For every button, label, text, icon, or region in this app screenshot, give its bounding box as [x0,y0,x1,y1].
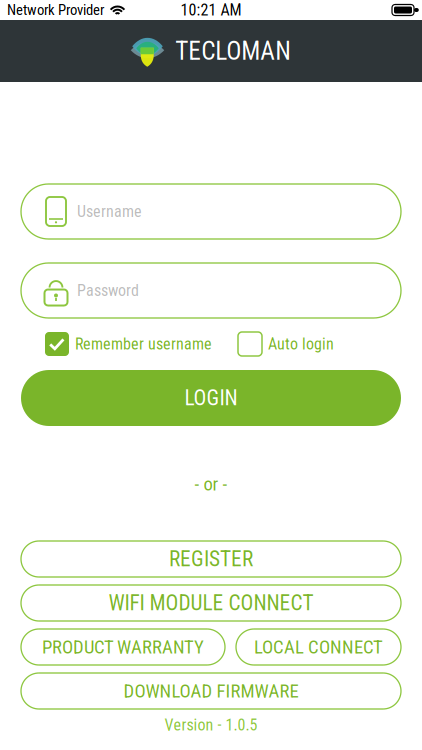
staticText: Password [77,281,139,300]
staticText: WIFI MODULE CONNECT [108,590,313,615]
staticText: Auto login [268,335,334,353]
button[interactable]: LOGIN [21,370,401,426]
button[interactable]: PRODUCT WARRANTY [21,629,225,665]
staticText: Remember username [75,335,212,353]
button[interactable]: REGISTER [21,541,401,577]
staticText: LOCAL CONNECT [254,636,383,658]
staticText: LOGIN [184,385,237,410]
button[interactable]: DOWNLOAD FIRMWARE [21,673,401,709]
staticText: Version - 1.0.5 [164,716,257,734]
button[interactable]: Remember username [45,332,212,356]
button[interactable]: Auto login [238,332,334,356]
staticText: TECLOMAN [175,36,291,66]
staticText: DOWNLOAD FIRMWARE [123,680,298,702]
staticText: PRODUCT WARRANTY [42,636,204,658]
staticText: - or - [194,473,227,495]
staticText: 10:21 AM [180,1,241,19]
button[interactable]: LOCAL CONNECT [236,629,401,665]
staticText: REGISTER [169,546,253,571]
staticText: Network Provider [7,1,104,19]
staticText: Username [77,202,142,221]
button[interactable]: WIFI MODULE CONNECT [21,585,401,621]
